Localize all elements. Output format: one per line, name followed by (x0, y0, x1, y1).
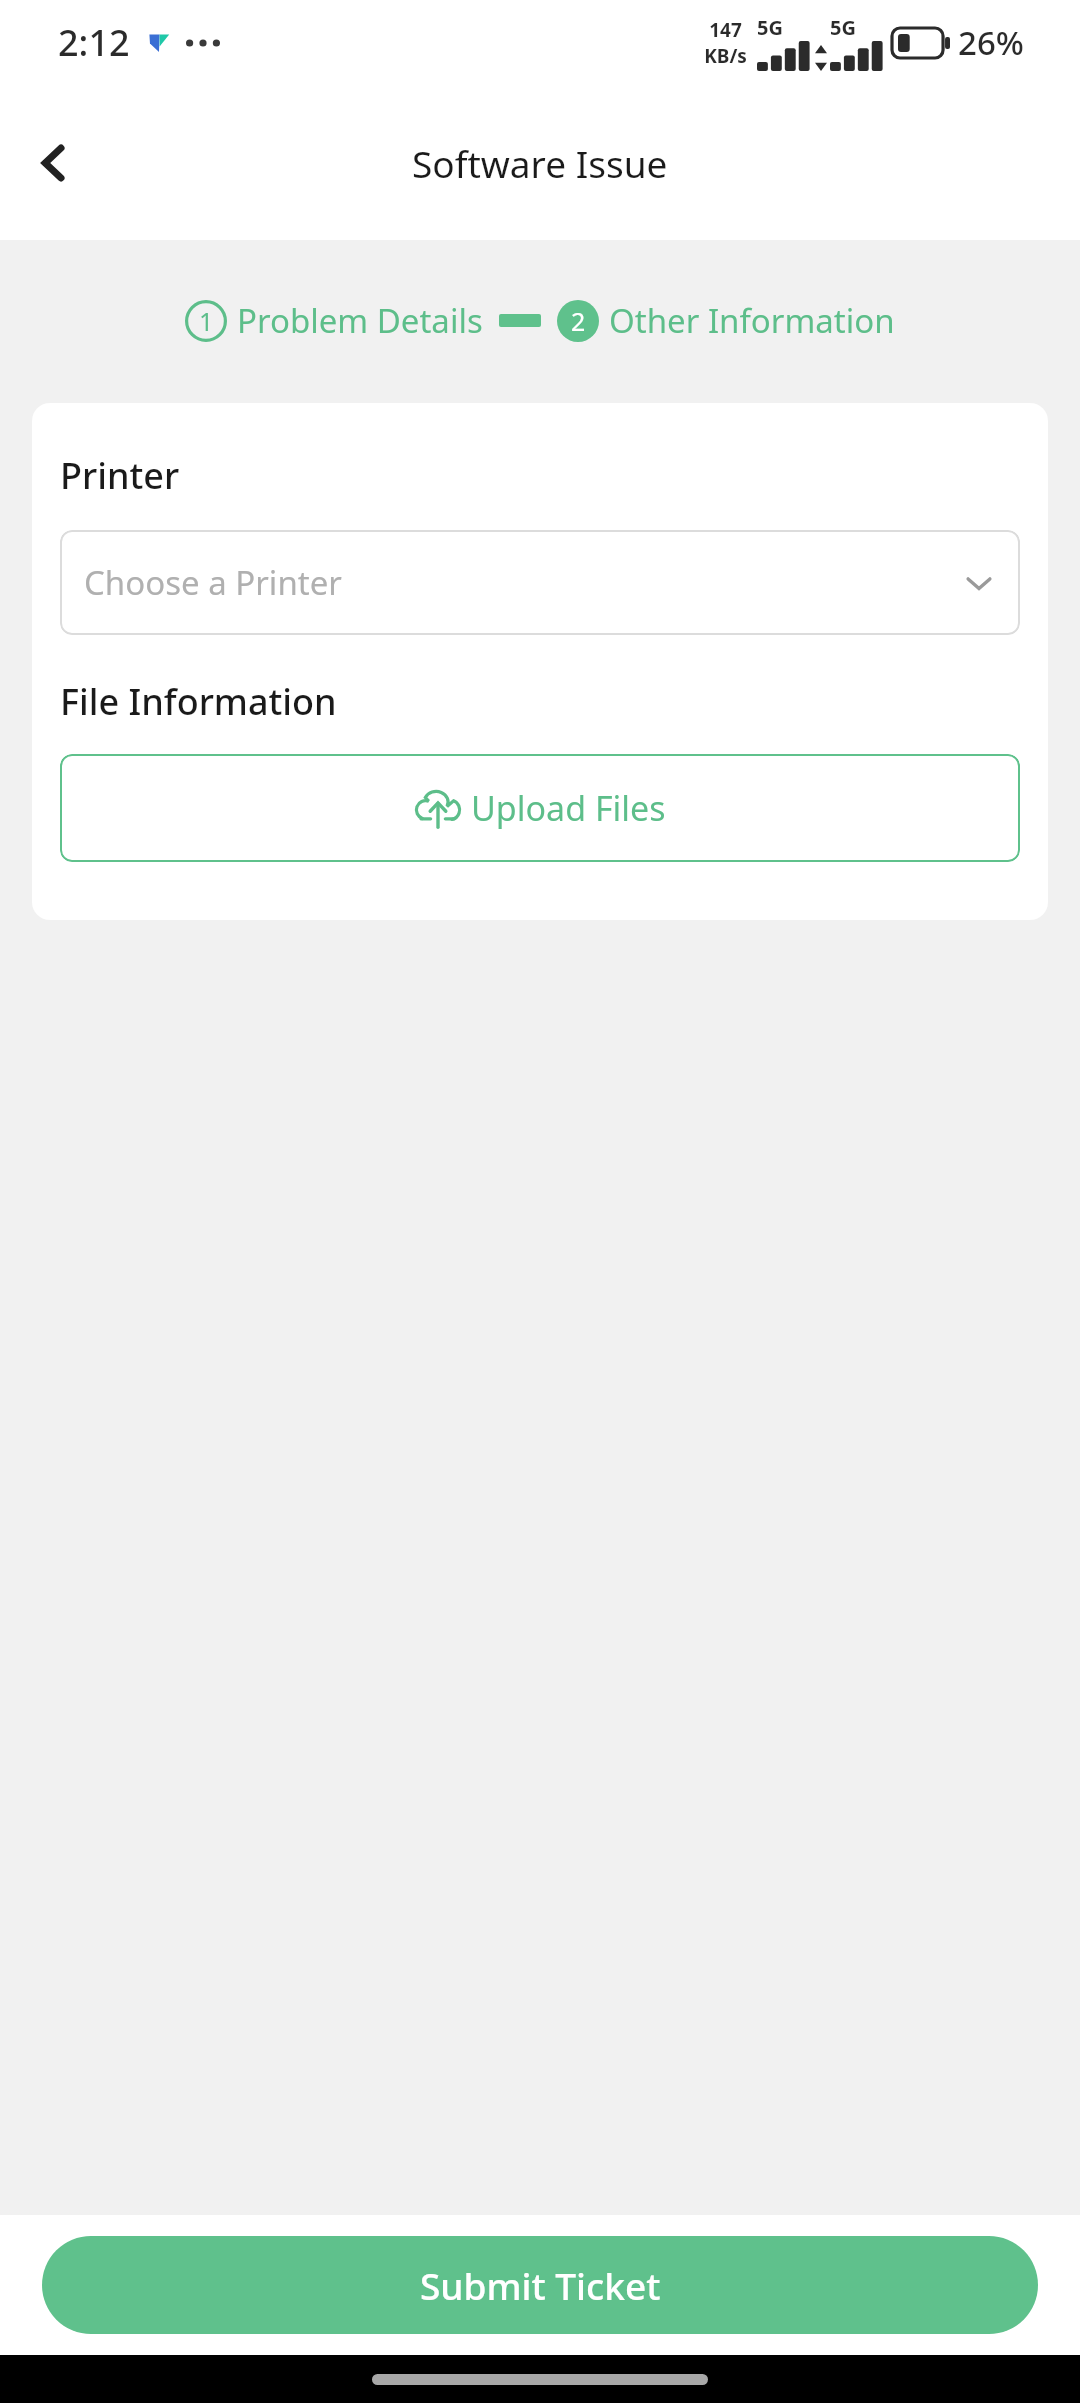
staticText: 147 (709, 17, 742, 43)
staticText: Other Information (609, 298, 895, 343)
staticText: Problem Details (237, 298, 483, 343)
staticText: KB/s (704, 43, 747, 69)
staticText: 5G (830, 14, 856, 41)
staticText: 2:12 (58, 18, 130, 67)
staticText: 5G (757, 14, 783, 41)
staticText: Submit Ticket (420, 2260, 661, 2310)
staticText: Software Issue (412, 138, 668, 188)
staticText: 2 (571, 304, 586, 338)
staticText: Upload Files (471, 785, 666, 831)
staticText: Choose a Printer (84, 560, 342, 605)
button[interactable]: Submit Ticket (42, 2236, 1038, 2334)
staticText: 26% (958, 20, 1024, 65)
button[interactable]: Upload Files (60, 754, 1020, 862)
button[interactable]: Choose a Printer (60, 530, 1020, 635)
staticText: 1 (199, 304, 214, 338)
staticText: File Information (60, 677, 337, 726)
staticText: Printer (60, 451, 180, 500)
button[interactable]: Back (14, 123, 94, 203)
